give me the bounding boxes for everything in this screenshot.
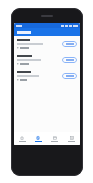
button[interactable] bbox=[62, 73, 77, 79]
button[interactable]: Devices bbox=[46, 132, 63, 145]
button[interactable] bbox=[62, 41, 77, 47]
button[interactable] bbox=[14, 36, 80, 52]
button[interactable] bbox=[14, 52, 80, 68]
button[interactable] bbox=[14, 68, 80, 84]
button[interactable]: Home bbox=[14, 132, 30, 145]
button[interactable]: Battery bbox=[30, 132, 46, 145]
button[interactable] bbox=[14, 28, 80, 36]
button[interactable]: Settings bbox=[63, 132, 80, 145]
button[interactable] bbox=[62, 57, 77, 63]
